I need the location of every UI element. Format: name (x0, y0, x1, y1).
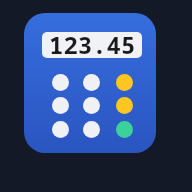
staticText: 123.45 (49, 32, 136, 54)
button[interactable]: 2 (83, 121, 100, 138)
button[interactable]: equals (116, 121, 133, 138)
button[interactable]: 5 (83, 97, 100, 114)
button[interactable]: divide (116, 74, 133, 91)
button[interactable]: 7 (52, 74, 69, 91)
button[interactable]: 8 (83, 74, 100, 91)
button[interactable]: 4 (52, 97, 69, 114)
button[interactable]: 1 (52, 121, 69, 138)
button[interactable]: 123.45 (24, 13, 156, 153)
button[interactable]: multiply (116, 97, 133, 114)
